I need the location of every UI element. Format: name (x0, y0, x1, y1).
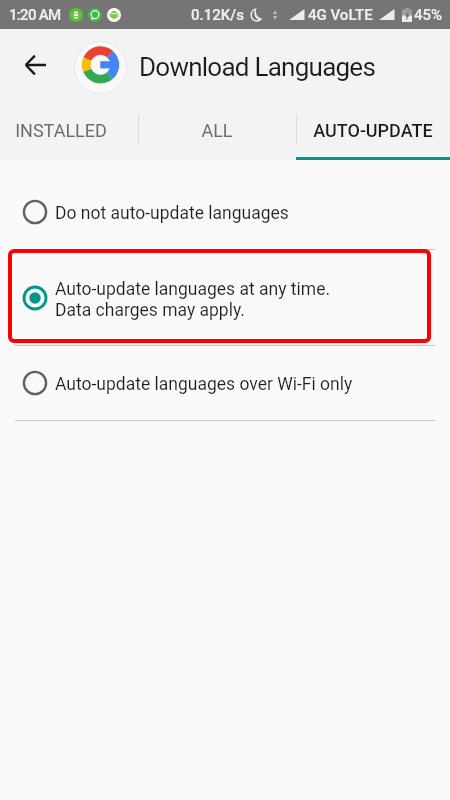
staticText: Data charges may apply. (55, 300, 245, 321)
button[interactable]: INSTALLED (0, 100, 138, 160)
button[interactable]: Back (15, 45, 55, 85)
staticText: 45% (414, 6, 443, 24)
staticText: Auto-update languages at any time. (55, 279, 331, 300)
staticText: Auto-update languages over Wi-Fi only (55, 374, 353, 395)
button[interactable]: Do not auto-update languages (0, 174, 450, 249)
staticText: ALL (201, 120, 233, 141)
button[interactable]: Auto-update languages at any time. (0, 250, 450, 345)
staticText: Do not auto-update languages (55, 203, 289, 224)
staticText: 1:20 AM (9, 6, 61, 24)
staticText: 0.12K/s (191, 6, 244, 24)
staticText: 4G VoLTE (308, 6, 373, 24)
staticText: AUTO-UPDATE (313, 120, 433, 141)
staticText: Download Languages (139, 52, 376, 82)
button[interactable]: ALL (138, 100, 296, 160)
button[interactable]: Auto-update languages over Wi-Fi only (0, 345, 450, 420)
button[interactable]: AUTO-UPDATE (296, 100, 450, 160)
staticText: INSTALLED (15, 120, 107, 141)
